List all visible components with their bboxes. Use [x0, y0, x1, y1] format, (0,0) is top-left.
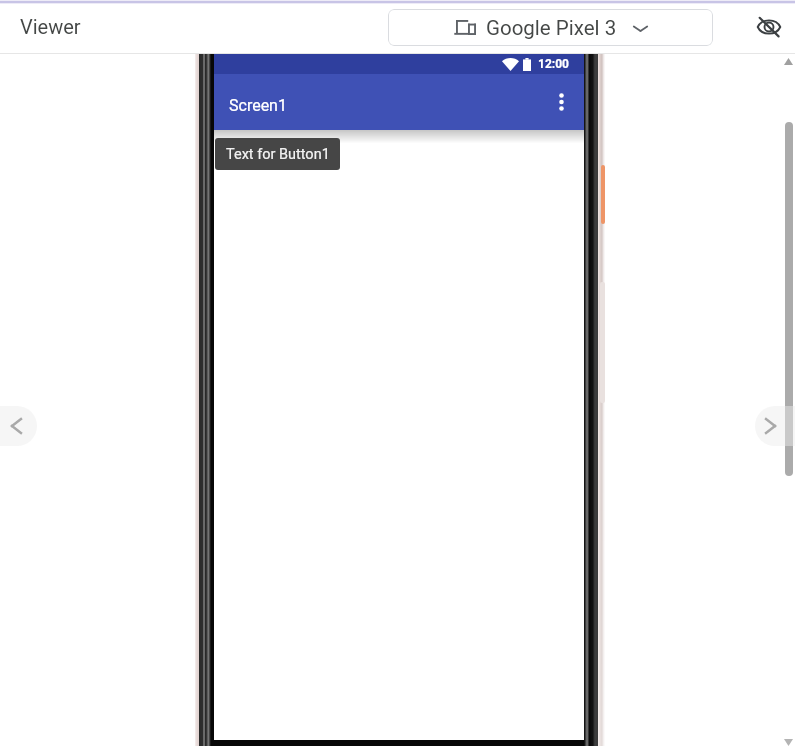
button[interactable]: Toggle hidden components	[750, 8, 788, 46]
button[interactable]: Next screen	[755, 406, 795, 446]
button[interactable]: Previous screen	[0, 406, 37, 446]
staticText: Google Pixel 3	[486, 16, 617, 40]
staticText: Viewer	[20, 15, 81, 38]
staticText: 12:00	[538, 57, 569, 71]
staticText: Screen1	[229, 96, 287, 115]
button[interactable]: Scroll up	[784, 58, 793, 65]
button[interactable]: Scrollbar	[785, 122, 793, 476]
button[interactable]: Google Pixel 3	[388, 9, 713, 46]
button[interactable]: Text for Button1	[215, 138, 340, 170]
button[interactable]: Scroll down	[784, 739, 793, 746]
button[interactable]: More options	[545, 86, 577, 118]
staticText: Text for Button1	[226, 146, 330, 163]
